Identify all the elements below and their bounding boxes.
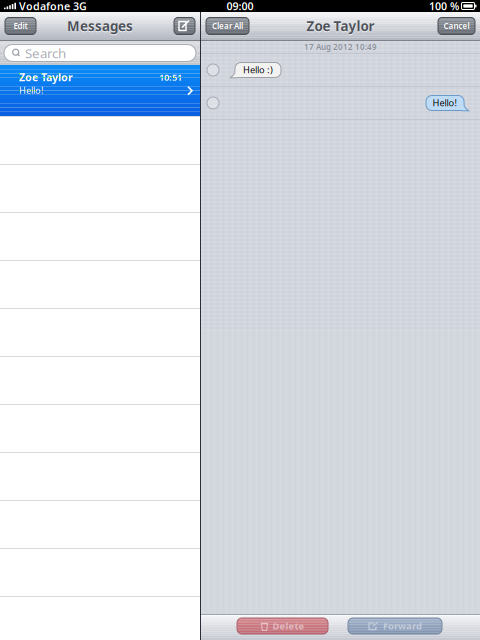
button[interactable]: Select message: [207, 64, 219, 76]
button[interactable]: Forward: [348, 618, 442, 634]
staticText: Search: [25, 44, 66, 62]
staticText: Delete: [272, 620, 304, 632]
staticText: 09:00: [226, 0, 253, 13]
staticText: Zoe Taylor: [19, 70, 73, 84]
staticText: Vodafone 3G: [19, 0, 87, 13]
staticText: Hello!: [432, 96, 457, 109]
staticText: 17 Aug 2012 10:49: [304, 42, 377, 52]
staticText: Hello :): [243, 63, 273, 76]
staticText: Cancel: [443, 21, 469, 31]
button[interactable]: Select message: [207, 97, 219, 109]
staticText: Zoe Taylor: [306, 18, 374, 36]
button[interactable]: Delete: [237, 618, 328, 634]
staticText: Messages: [67, 18, 133, 36]
staticText: Zoe Taylor: [306, 17, 374, 35]
button[interactable]: Compose: [174, 17, 195, 34]
button[interactable]: Cancel: [438, 17, 475, 34]
staticText: Hello!: [19, 84, 44, 96]
button[interactable]: Clear All: [206, 17, 249, 34]
staticText: Forward: [383, 620, 422, 632]
staticText: Messages: [67, 17, 133, 35]
staticText: Clear All: [212, 21, 243, 31]
staticText: 10:51: [159, 71, 182, 83]
button[interactable]: Zoe Taylor: [0, 65, 200, 116]
staticText: 100 %: [429, 0, 459, 13]
staticText: Edit: [13, 21, 27, 31]
button[interactable]: Edit: [5, 17, 36, 34]
